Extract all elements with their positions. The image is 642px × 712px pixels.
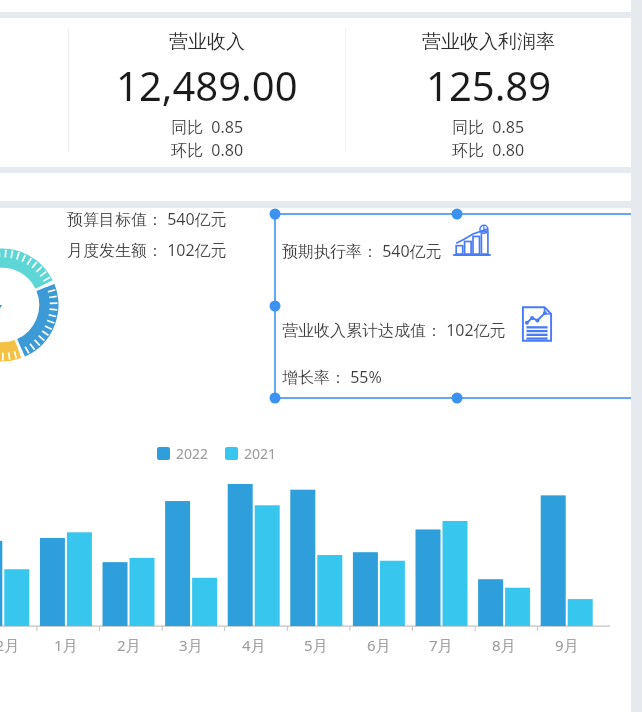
- staticText: 2月: [117, 635, 141, 655]
- staticText: 3月: [179, 635, 203, 655]
- staticText: 6月: [367, 635, 391, 655]
- staticText: 营业收入累计达成值： 102亿元: [282, 319, 506, 341]
- staticText: 环比 0.80: [171, 139, 244, 161]
- staticText: 7月: [429, 635, 453, 655]
- staticText: 12,489.00: [116, 58, 298, 112]
- staticText: 8月: [492, 635, 516, 655]
- staticText: 预算目标值： 540亿元: [67, 208, 227, 230]
- staticText: 1月: [54, 635, 78, 655]
- staticText: 月度发生额： 102亿元: [67, 239, 227, 261]
- staticText: 5月: [304, 635, 328, 655]
- button[interactable]: 营业收入: [69, 30, 345, 161]
- staticText: 2022: [176, 444, 209, 463]
- other: Revenue report: [515, 302, 559, 346]
- staticText: 增长率： 55%: [282, 366, 382, 388]
- staticText: 9月: [555, 635, 579, 655]
- staticText: 4月: [242, 635, 266, 655]
- button[interactable]: 2022: [157, 444, 277, 463]
- staticText: 营业收入利润率: [422, 30, 555, 54]
- button[interactable]: 预算目标值： 540亿元: [67, 208, 227, 261]
- other: Revenue bar chart: [452, 223, 494, 265]
- staticText: 环比 0.80: [452, 139, 525, 161]
- staticText: 125.89: [426, 58, 552, 112]
- staticText: 12月: [0, 635, 20, 655]
- button[interactable]: 预期执行率： 540亿元: [275, 214, 639, 398]
- staticText: 预期执行率： 540亿元: [282, 240, 442, 262]
- button[interactable]: 营业收入利润率: [346, 30, 631, 161]
- staticText: 同比 0.85: [171, 116, 244, 138]
- staticText: 2021: [244, 444, 277, 463]
- staticText: 同比 0.85: [452, 116, 525, 138]
- staticText: 营业收入: [169, 30, 245, 54]
